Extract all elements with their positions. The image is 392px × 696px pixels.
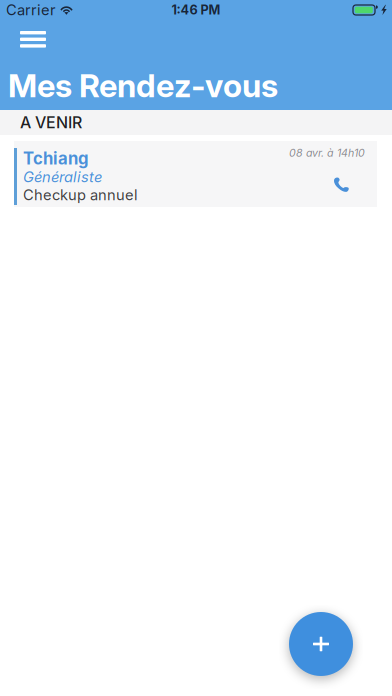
button[interactable]: Nouveau rendez-vous [289,612,353,676]
staticText: 1:46 PM [171,2,220,18]
staticText: Checkup annuel [23,186,138,204]
staticText: A VENIR [20,113,82,132]
button[interactable]: Tchiang [14,141,377,207]
staticText: 08 avr. à 14h10 [289,146,365,159]
staticText: Généraliste [23,168,102,186]
staticText: Mes Rendez-vous [8,66,278,105]
staticText: Tchiang [23,148,89,169]
staticText: Carrier [6,1,56,19]
button[interactable]: Menu [0,20,58,54]
